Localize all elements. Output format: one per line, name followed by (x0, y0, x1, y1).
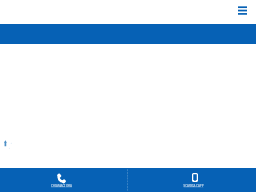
button[interactable]: Open menu (235, 2, 250, 17)
button[interactable]: CHIAMACI ORA (5, 168, 118, 192)
staticText: CHIAMACI ORA (5, 184, 118, 188)
staticText: SCARICA L'APP (137, 184, 250, 188)
button[interactable]: Back to top (2, 138, 13, 149)
button[interactable]: SCARICA L'APP (137, 168, 250, 192)
